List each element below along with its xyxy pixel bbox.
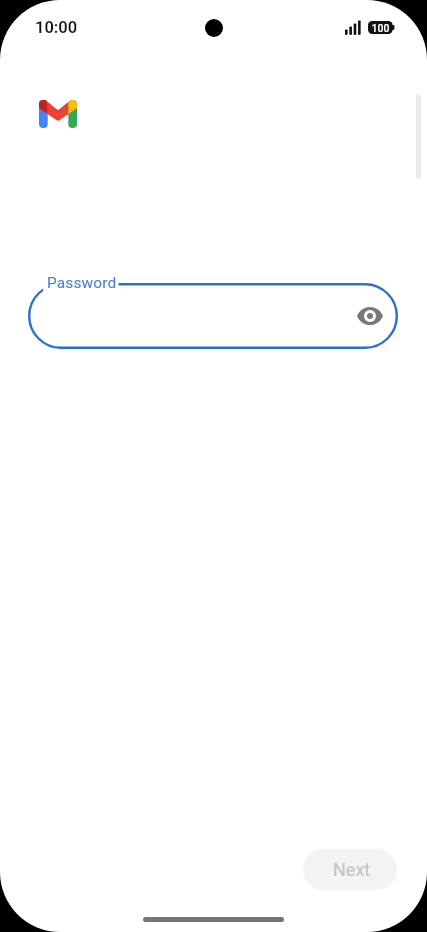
button[interactable]: Next (303, 849, 397, 890)
button[interactable]: Show password (28, 274, 398, 349)
staticText: Password (47, 274, 117, 292)
staticText: 10:00 (35, 18, 78, 37)
button[interactable]: Show password (350, 296, 390, 336)
staticText: 100 (368, 22, 393, 34)
staticText: Next (333, 859, 371, 880)
